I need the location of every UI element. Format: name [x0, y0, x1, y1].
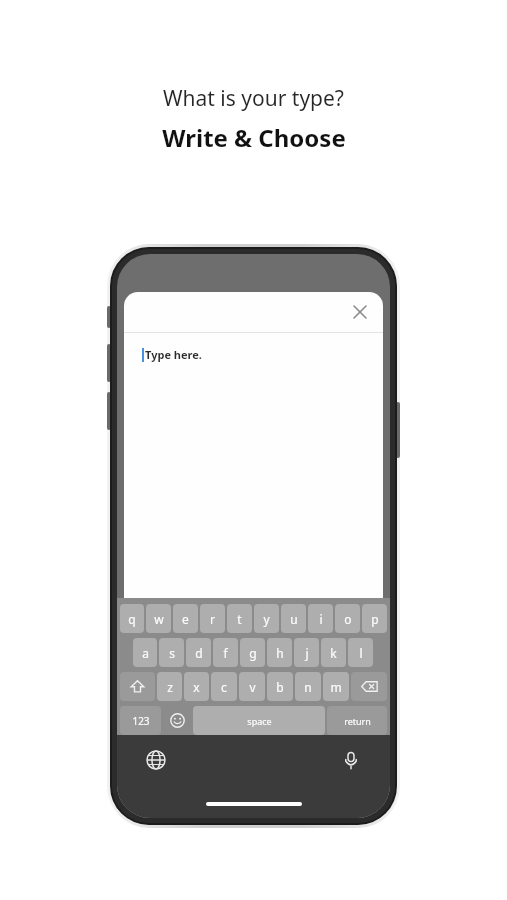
staticText: n: [304, 679, 312, 695]
staticText: i: [319, 611, 323, 627]
button[interactable]: j: [294, 638, 319, 667]
staticText: y: [263, 611, 270, 627]
button[interactable]: g: [240, 638, 265, 667]
staticText: r: [210, 611, 215, 627]
staticText: t: [237, 611, 242, 627]
button[interactable]: Emoji: [163, 706, 191, 735]
button[interactable]: u: [281, 604, 306, 633]
button[interactable]: x: [184, 672, 209, 701]
button[interactable]: e: [173, 604, 198, 633]
button[interactable]: 123: [120, 706, 161, 735]
button[interactable]: z: [157, 672, 182, 701]
staticText: o: [344, 611, 352, 627]
staticText: e: [182, 611, 189, 627]
button[interactable]: v: [239, 672, 265, 701]
button[interactable]: a: [133, 638, 157, 667]
staticText: What is your type?: [163, 84, 344, 113]
staticText: c: [221, 679, 227, 695]
button[interactable]: return: [327, 706, 387, 735]
button[interactable]: l: [348, 638, 373, 667]
button[interactable]: Change keyboard language: [143, 747, 169, 773]
staticText: j: [305, 645, 309, 661]
button[interactable]: t: [227, 604, 252, 633]
button[interactable]: w: [146, 604, 171, 633]
staticText: l: [359, 645, 363, 661]
staticText: h: [276, 645, 284, 661]
staticText: s: [169, 645, 175, 661]
button[interactable]: p: [362, 604, 387, 633]
staticText: z: [167, 679, 173, 695]
button[interactable]: Close: [347, 299, 373, 325]
staticText: k: [330, 645, 337, 661]
staticText: v: [249, 679, 256, 695]
button[interactable]: n: [295, 672, 321, 701]
button[interactable]: Shift: [120, 672, 155, 701]
staticText: p: [371, 611, 379, 627]
staticText: Write & Choose: [162, 121, 346, 154]
button[interactable]: d: [186, 638, 211, 667]
staticText: f: [223, 645, 228, 661]
button[interactable]: b: [267, 672, 293, 701]
button[interactable]: Backspace: [351, 672, 387, 701]
button[interactable]: h: [267, 638, 292, 667]
staticText: 123: [132, 714, 150, 728]
button[interactable]: f: [213, 638, 238, 667]
staticText: m: [330, 679, 342, 695]
staticText: space: [247, 715, 272, 727]
staticText: b: [276, 679, 284, 695]
staticText: g: [249, 645, 257, 661]
button[interactable]: o: [335, 604, 360, 633]
button[interactable]: Dictation: [338, 747, 364, 773]
staticText: w: [154, 611, 164, 627]
button[interactable]: i: [308, 604, 333, 633]
staticText: a: [142, 645, 149, 661]
button[interactable]: y: [254, 604, 279, 633]
button[interactable]: k: [321, 638, 346, 667]
staticText: u: [290, 611, 298, 627]
staticText: return: [344, 715, 371, 727]
button[interactable]: c: [211, 672, 237, 701]
button[interactable]: space: [193, 706, 325, 735]
staticText: x: [193, 679, 200, 695]
staticText: d: [195, 645, 203, 661]
button[interactable]: q: [120, 604, 144, 633]
staticText: q: [128, 611, 136, 627]
button[interactable]: r: [200, 604, 225, 633]
button[interactable]: m: [323, 672, 349, 701]
button[interactable]: s: [159, 638, 184, 667]
staticText: Type here.: [145, 347, 202, 362]
